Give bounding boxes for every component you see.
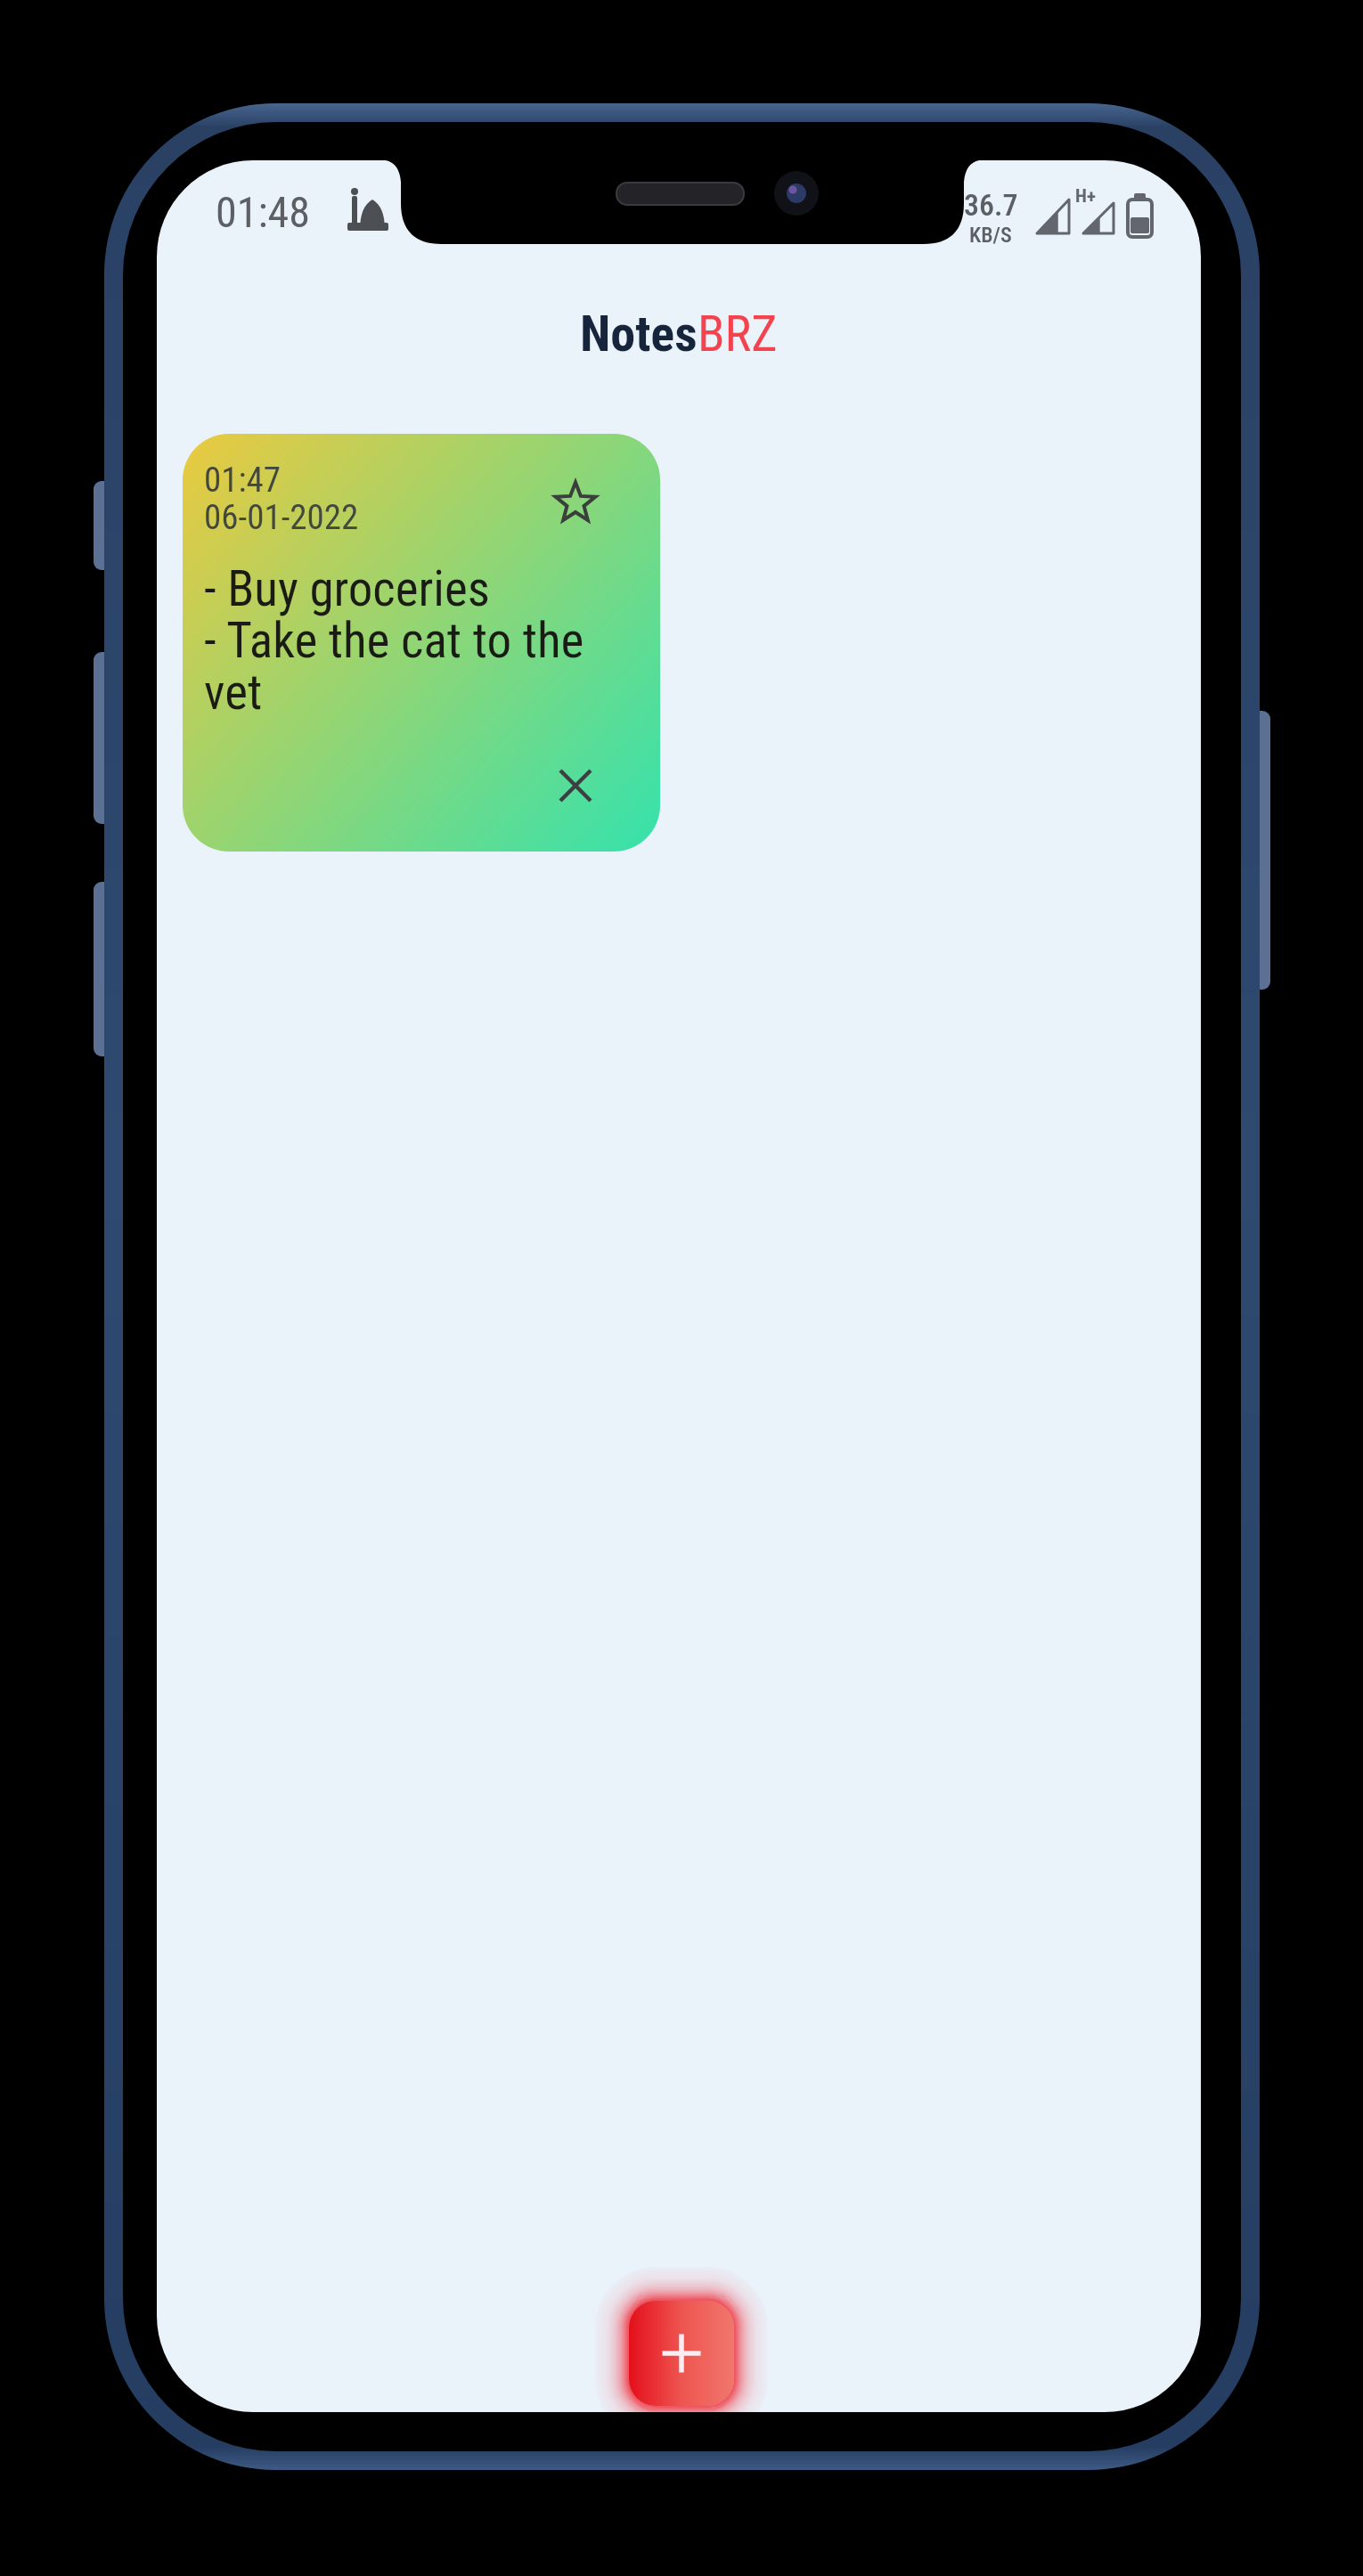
staticText: 36.7: [964, 187, 1018, 223]
staticText: 01:48: [216, 187, 310, 237]
staticText: 01:47 06-01-2022: [204, 460, 359, 538]
staticText: BRZ: [698, 305, 778, 363]
staticText: Notes: [580, 305, 698, 363]
button[interactable]: 01:47 06-01-2022: [183, 434, 660, 852]
button[interactable]: [545, 755, 606, 816]
button[interactable]: [545, 471, 606, 532]
button[interactable]: [629, 2301, 734, 2406]
staticText: - Buy groceries - Take the cat to the ve…: [204, 560, 584, 721]
staticText: KB/S: [969, 223, 1012, 248]
staticText: H+: [1075, 185, 1096, 208]
